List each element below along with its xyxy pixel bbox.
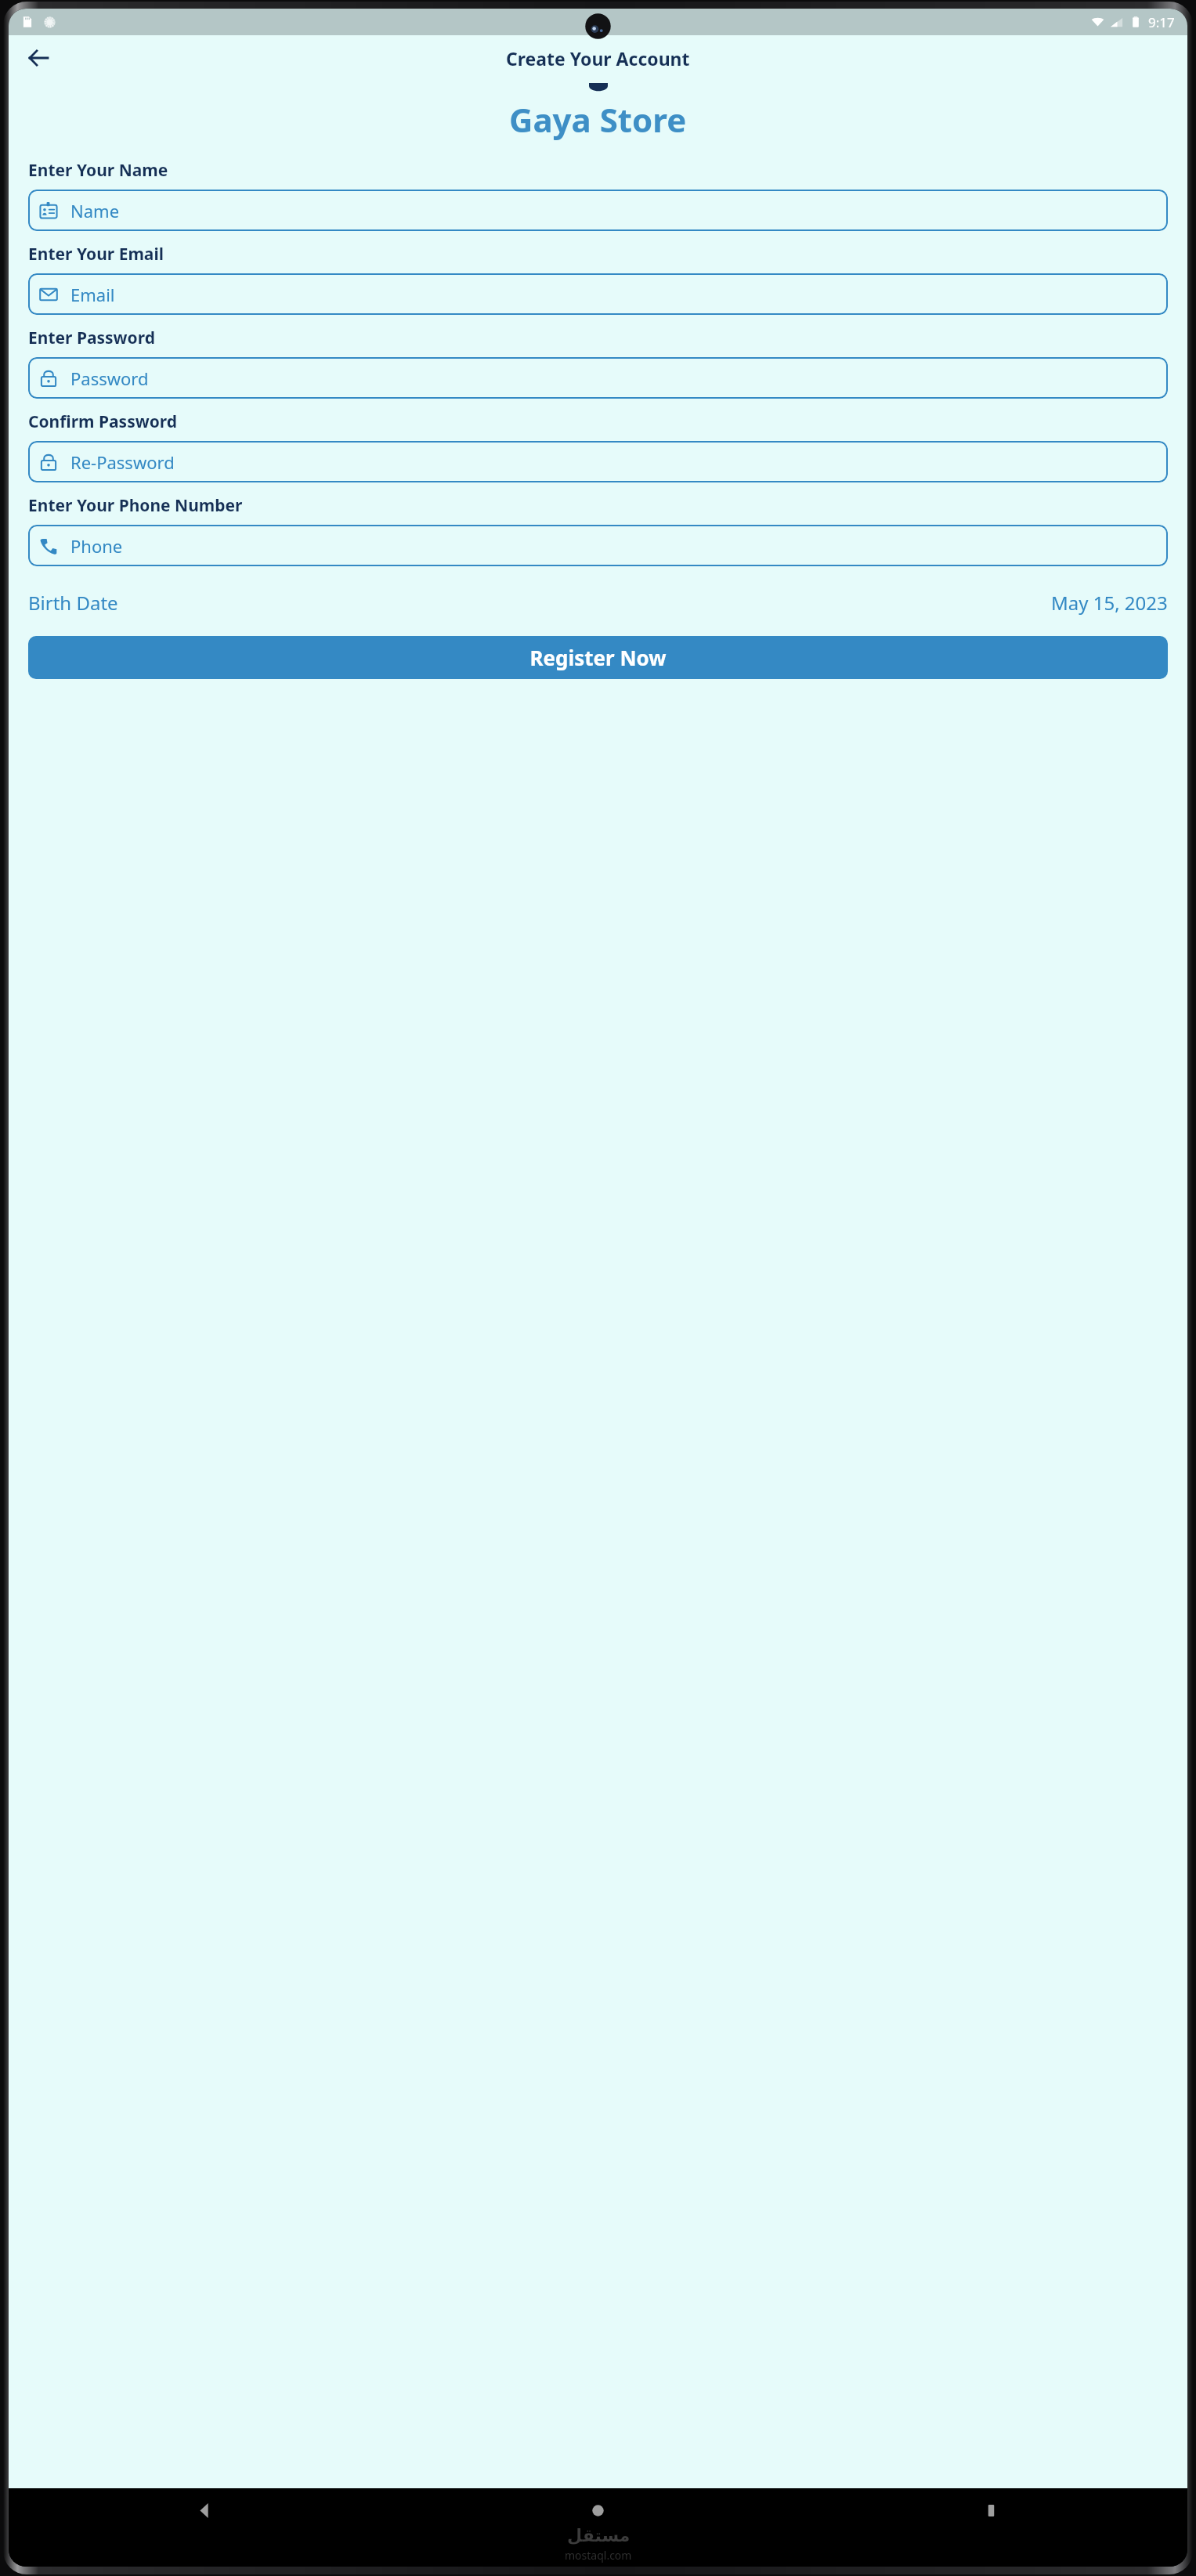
button[interactable]: Re-Password	[28, 441, 1168, 482]
staticText: mostaql.com	[565, 2548, 632, 2563]
button[interactable]: Register Now	[28, 636, 1168, 679]
staticText: مستقل	[567, 2526, 631, 2546]
staticText: Enter Your Email	[28, 243, 164, 266]
staticText: May 15, 2023	[1051, 590, 1168, 616]
staticText: Phone	[70, 534, 123, 558]
staticText: Gaya Store	[509, 97, 687, 142]
staticText: Confirm Password	[28, 410, 178, 433]
staticText: Password	[70, 367, 149, 390]
staticText: Register Now	[529, 644, 667, 671]
staticText: Enter Your Name	[28, 159, 168, 182]
button[interactable]: Birth Date	[28, 587, 1168, 619]
staticText: Enter Password	[28, 327, 155, 349]
button[interactable]: Password	[28, 357, 1168, 399]
staticText: Create Your Account	[506, 46, 690, 70]
button[interactable]: Name	[28, 190, 1168, 231]
staticText: Birth Date	[28, 590, 118, 616]
button[interactable]: Phone	[28, 525, 1168, 566]
button[interactable]: Home	[401, 2488, 794, 2532]
button[interactable]: Back	[9, 2488, 401, 2532]
staticText: 9:17	[1148, 13, 1175, 31]
button[interactable]: Back	[20, 39, 57, 77]
staticText: Re-Password	[70, 450, 175, 474]
staticText: Enter Your Phone Number	[28, 494, 243, 517]
staticText: Email	[70, 283, 115, 306]
staticText: Name	[70, 199, 120, 222]
button[interactable]: Recent apps	[794, 2488, 1187, 2532]
button[interactable]: Email	[28, 273, 1168, 315]
